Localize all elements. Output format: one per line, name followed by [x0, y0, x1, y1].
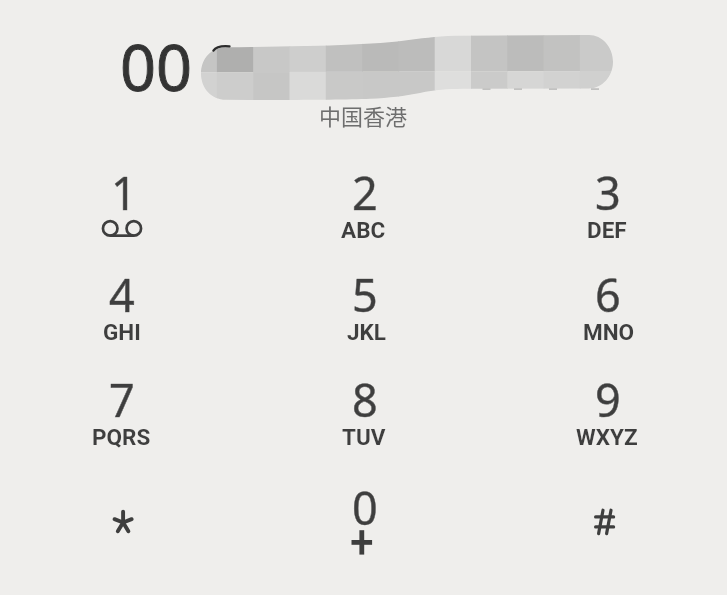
staticText: 4 — [109, 264, 135, 325]
staticText: 3 — [595, 162, 621, 223]
button[interactable]: 8 — [302, 350, 426, 450]
staticText: 6 — [595, 264, 621, 325]
staticText: 1 — [111, 162, 137, 223]
staticText: 3 — [595, 162, 621, 223]
staticText: PQRS — [92, 424, 151, 450]
staticText: 8 — [352, 369, 378, 430]
button[interactable]: 1 — [59, 143, 183, 243]
staticText: 2 — [352, 162, 378, 223]
staticText: 1 — [111, 162, 137, 223]
staticText: 0 — [352, 477, 378, 538]
staticText: MNO — [583, 319, 635, 345]
staticText: JKL — [347, 319, 387, 345]
staticText: DEF — [587, 217, 627, 243]
button[interactable]: 5 — [302, 245, 426, 345]
button[interactable]: 3 — [545, 143, 669, 243]
staticText: 5 — [352, 264, 378, 325]
staticText: 0 — [352, 477, 378, 538]
button[interactable]: 7 — [59, 350, 183, 450]
staticText: 8 — [352, 369, 378, 430]
button[interactable]: pound — [545, 458, 669, 558]
button[interactable]: 9 — [545, 350, 669, 450]
staticText: TUV — [342, 424, 386, 450]
staticText: 9 — [595, 369, 621, 430]
staticText: GHI — [103, 319, 141, 345]
staticText: 2 — [352, 162, 378, 223]
staticText: 中国香港 — [319, 99, 408, 131]
staticText: ABC — [341, 217, 386, 243]
staticText: 6 — [595, 264, 621, 325]
button[interactable]: 4 — [59, 245, 183, 345]
staticText: 00 — [120, 24, 193, 110]
staticText: WXYZ — [576, 424, 638, 450]
staticText: 5 — [352, 264, 378, 325]
button[interactable]: 6 — [545, 245, 669, 345]
button[interactable]: 2 — [302, 143, 426, 243]
staticText: 7 — [109, 369, 135, 430]
button[interactable]: 0 — [302, 458, 426, 558]
staticText: 7 — [109, 369, 135, 430]
button[interactable]: star — [59, 458, 183, 558]
staticText: 00 — [120, 24, 193, 110]
staticText: 9 — [595, 369, 621, 430]
staticText: 4 — [109, 264, 135, 325]
